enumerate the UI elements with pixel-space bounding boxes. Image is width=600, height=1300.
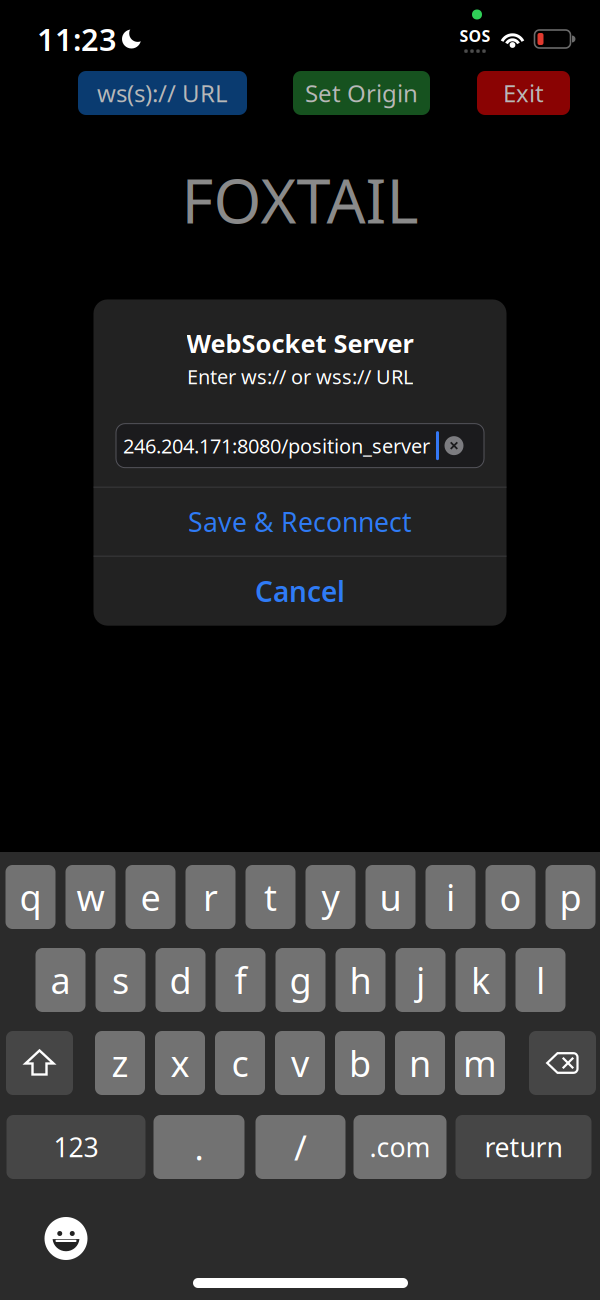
staticText: ws(s):// URL <box>97 77 228 109</box>
staticText: Enter ws:// or wss:// URL <box>187 363 413 390</box>
staticText: b <box>349 1039 371 1087</box>
button[interactable]: o <box>485 865 535 929</box>
button[interactable]: u <box>365 865 415 929</box>
staticText: r <box>203 873 218 921</box>
staticText: m <box>463 1039 497 1087</box>
button[interactable]: g <box>275 948 325 1012</box>
button[interactable]: y <box>305 865 355 929</box>
staticText: d <box>169 956 191 1004</box>
button[interactable]: r <box>185 865 235 929</box>
staticText: i <box>446 873 455 921</box>
staticText: u <box>379 873 401 921</box>
staticText: FOXTAIL <box>181 159 418 240</box>
staticText: a <box>50 956 70 1004</box>
button[interactable]: Emoji <box>44 1217 87 1260</box>
staticText: x <box>170 1039 189 1087</box>
staticText: h <box>349 956 371 1004</box>
button[interactable]: return <box>455 1115 591 1179</box>
button[interactable]: Exit <box>477 71 570 115</box>
staticText: c <box>231 1039 248 1087</box>
staticText: 246.204.171:8080/position_server <box>123 432 430 459</box>
staticText: Cancel <box>255 573 345 610</box>
button[interactable]: f <box>215 948 265 1012</box>
button[interactable]: ws(s):// URL <box>78 71 247 115</box>
staticText: WebSocket Server <box>186 326 413 360</box>
staticText: 123 <box>53 1129 98 1165</box>
staticText: Save & Reconnect <box>188 504 412 539</box>
staticText: f <box>234 956 246 1004</box>
button[interactable]: 123 <box>6 1115 145 1179</box>
button[interactable]: x <box>155 1031 205 1095</box>
staticText: w <box>76 873 104 921</box>
staticText: y <box>321 873 339 921</box>
button[interactable]: l <box>515 948 565 1012</box>
staticText: n <box>409 1039 431 1087</box>
button[interactable]: t <box>245 865 295 929</box>
staticText: l <box>536 956 545 1004</box>
button[interactable]: b <box>335 1031 385 1095</box>
staticText: t <box>264 873 277 921</box>
button[interactable]: c <box>215 1031 265 1095</box>
button[interactable]: Delete <box>529 1031 596 1095</box>
button[interactable]: Save & Reconnect <box>93 488 506 556</box>
button[interactable]: / <box>255 1115 345 1179</box>
staticText: 11:23 <box>37 19 117 59</box>
button[interactable]: e <box>125 865 175 929</box>
staticText: . <box>194 1124 203 1170</box>
button[interactable]: m <box>455 1031 505 1095</box>
button[interactable]: w <box>65 865 115 929</box>
staticText: g <box>289 956 311 1004</box>
button[interactable]: j <box>395 948 445 1012</box>
staticText: o <box>499 873 521 921</box>
staticText: p <box>559 873 581 921</box>
staticText: j <box>416 956 425 1004</box>
button[interactable]: k <box>455 948 505 1012</box>
staticText: Exit <box>503 77 544 109</box>
button[interactable]: q <box>5 865 55 929</box>
staticText: s <box>112 956 129 1004</box>
staticText: q <box>19 873 41 921</box>
button[interactable]: p <box>545 865 595 929</box>
button[interactable]: .com <box>353 1115 446 1179</box>
button[interactable]: h <box>335 948 385 1012</box>
button[interactable]: n <box>395 1031 445 1095</box>
staticText: return <box>484 1129 562 1165</box>
button[interactable]: Shift <box>6 1031 73 1095</box>
button[interactable]: a <box>35 948 85 1012</box>
button[interactable]: i <box>425 865 475 929</box>
staticText: v <box>291 1039 309 1087</box>
button[interactable]: Set Origin <box>293 71 430 115</box>
staticText: Set Origin <box>305 77 418 109</box>
button[interactable]: Cancel <box>93 557 506 626</box>
staticText: / <box>294 1124 307 1170</box>
button[interactable]: d <box>155 948 205 1012</box>
staticText: SOS <box>459 25 490 46</box>
staticText: .com <box>369 1129 430 1165</box>
staticText: e <box>140 873 160 921</box>
button[interactable]: v <box>275 1031 325 1095</box>
button[interactable]: s <box>95 948 145 1012</box>
button[interactable]: . <box>153 1115 244 1179</box>
button[interactable]: z <box>95 1031 145 1095</box>
staticText: z <box>111 1039 128 1087</box>
staticText: k <box>471 956 490 1004</box>
